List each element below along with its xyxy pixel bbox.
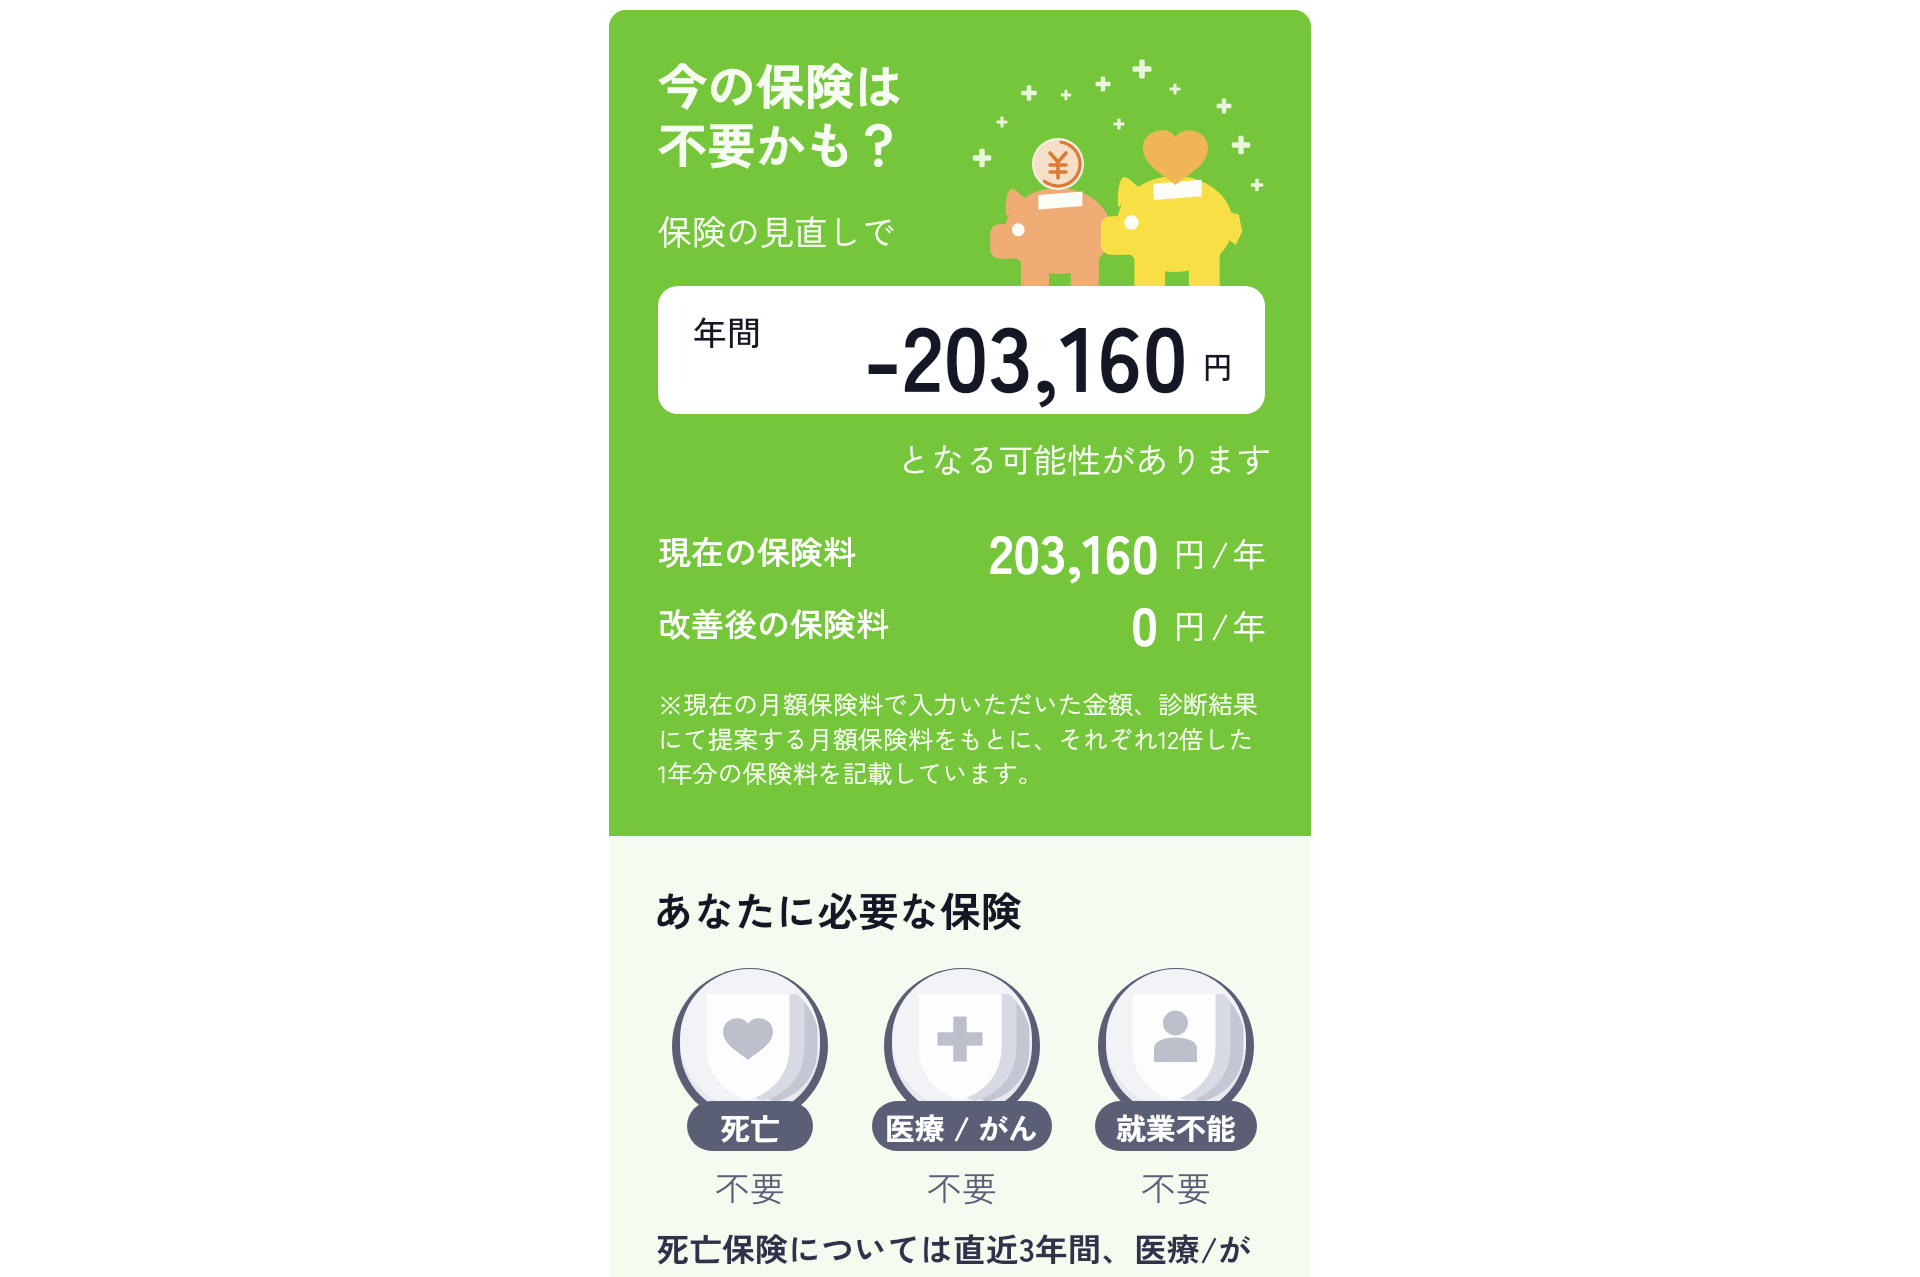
staticText: 円: [1202, 343, 1233, 388]
staticText: 現在の保険料: [658, 527, 856, 575]
staticText: 改善後の保険料: [658, 599, 889, 647]
button[interactable]: 死亡: [635, 958, 865, 1218]
staticText: 年: [1233, 601, 1266, 649]
staticText: 死亡保険については直近3年間、医療/が: [656, 1224, 1251, 1272]
staticText: 不要: [927, 1161, 998, 1212]
staticText: 203,160: [989, 511, 1159, 589]
staticText: 0: [1131, 583, 1159, 661]
staticText: 保険の見直しで: [658, 206, 896, 255]
staticText: 不要: [715, 1161, 786, 1212]
button[interactable]: 就業不能: [1061, 958, 1291, 1218]
staticText: -203,160: [863, 286, 1188, 414]
staticText: となる可能性があります: [658, 434, 1271, 483]
staticText: 円: [1173, 529, 1206, 577]
staticText: 今の保険は 不要かも？: [658, 48, 904, 178]
staticText: /: [1211, 601, 1230, 649]
staticText: /: [1211, 529, 1230, 577]
staticText: 医療 / がん: [885, 1105, 1039, 1148]
button[interactable]: 医療 / がん: [847, 958, 1077, 1218]
staticText: 年: [1233, 529, 1266, 577]
staticText: あなたに必要な保険: [653, 879, 1022, 938]
staticText: 不要: [1141, 1161, 1212, 1212]
staticText: 死亡: [720, 1105, 780, 1148]
staticText: ※現在の月額保険料で入力いただいた金額、診断結果 にて提案する月額保険料をもとに…: [658, 685, 1259, 790]
staticText: 年間: [693, 307, 761, 356]
staticText: 就業不能: [1116, 1105, 1236, 1148]
staticText: 円: [1173, 601, 1206, 649]
other: 貯金箱のイラスト: [609, 10, 1311, 836]
